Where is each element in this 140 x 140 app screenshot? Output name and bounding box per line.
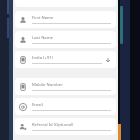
staticText: First Name (32, 15, 54, 21)
other: First Name (19, 16, 27, 24)
other: Referral Id (Optional) (19, 123, 27, 131)
button[interactable]: Mobile Number (15, 78, 116, 95)
button[interactable]: Email (15, 98, 116, 115)
button[interactable]: Referral Id (Optional) (15, 118, 116, 135)
staticText: Mobile Number (32, 82, 63, 88)
staticText: Last Name (32, 35, 53, 41)
button[interactable]: First Name (15, 11, 116, 28)
other: Last Name (19, 36, 27, 44)
staticText: India (+91) (32, 55, 53, 61)
other: Select country (105, 57, 111, 63)
other: India (+91) (19, 56, 27, 64)
button[interactable]: India (+91) (15, 51, 116, 68)
staticText: Referral Id (Optional) (32, 122, 74, 128)
button[interactable]: Last Name (15, 31, 116, 48)
other: Email (19, 103, 27, 111)
other: Mobile Number (19, 83, 27, 91)
staticText: Email (32, 102, 43, 108)
